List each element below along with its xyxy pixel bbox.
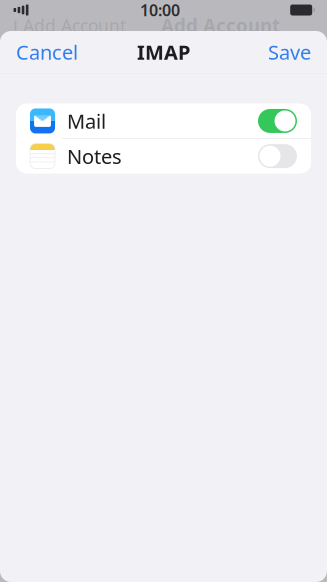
staticText: Add Account [23, 14, 126, 37]
staticText: IMAP [137, 39, 190, 65]
staticText: Mail [67, 108, 106, 134]
staticText: Add Account [161, 13, 280, 38]
button[interactable]: Cancel [0, 28, 94, 76]
staticText: Notes [67, 143, 122, 169]
button[interactable]: Notes [16, 139, 311, 173]
staticText: Cancel [16, 39, 78, 65]
button[interactable]: Mail [16, 104, 311, 138]
button[interactable]: Save [252, 28, 327, 76]
staticText: Save [268, 39, 311, 65]
staticText: 10:00 [140, 0, 180, 21]
